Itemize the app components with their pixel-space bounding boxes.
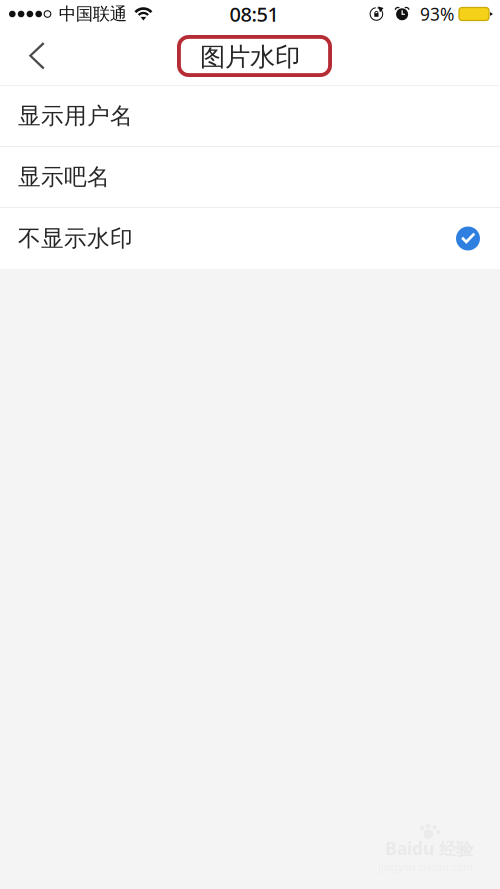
staticText: 显示用户名 bbox=[18, 102, 133, 130]
staticText: 显示吧名 bbox=[18, 163, 110, 191]
staticText: 图片水印 bbox=[200, 41, 300, 72]
button[interactable]: 显示吧名 bbox=[0, 147, 500, 208]
staticText: 93% bbox=[420, 2, 454, 25]
button[interactable]: 显示用户名 bbox=[0, 86, 500, 147]
staticText: 08:51 bbox=[229, 1, 278, 27]
button[interactable]: 不显示水印 bbox=[0, 208, 500, 269]
staticText: 不显示水印 bbox=[18, 225, 133, 252]
staticText: 中国联通 bbox=[59, 3, 127, 25]
staticText: Baidu 经验 bbox=[385, 837, 473, 860]
button[interactable]: Back bbox=[0, 28, 60, 86]
